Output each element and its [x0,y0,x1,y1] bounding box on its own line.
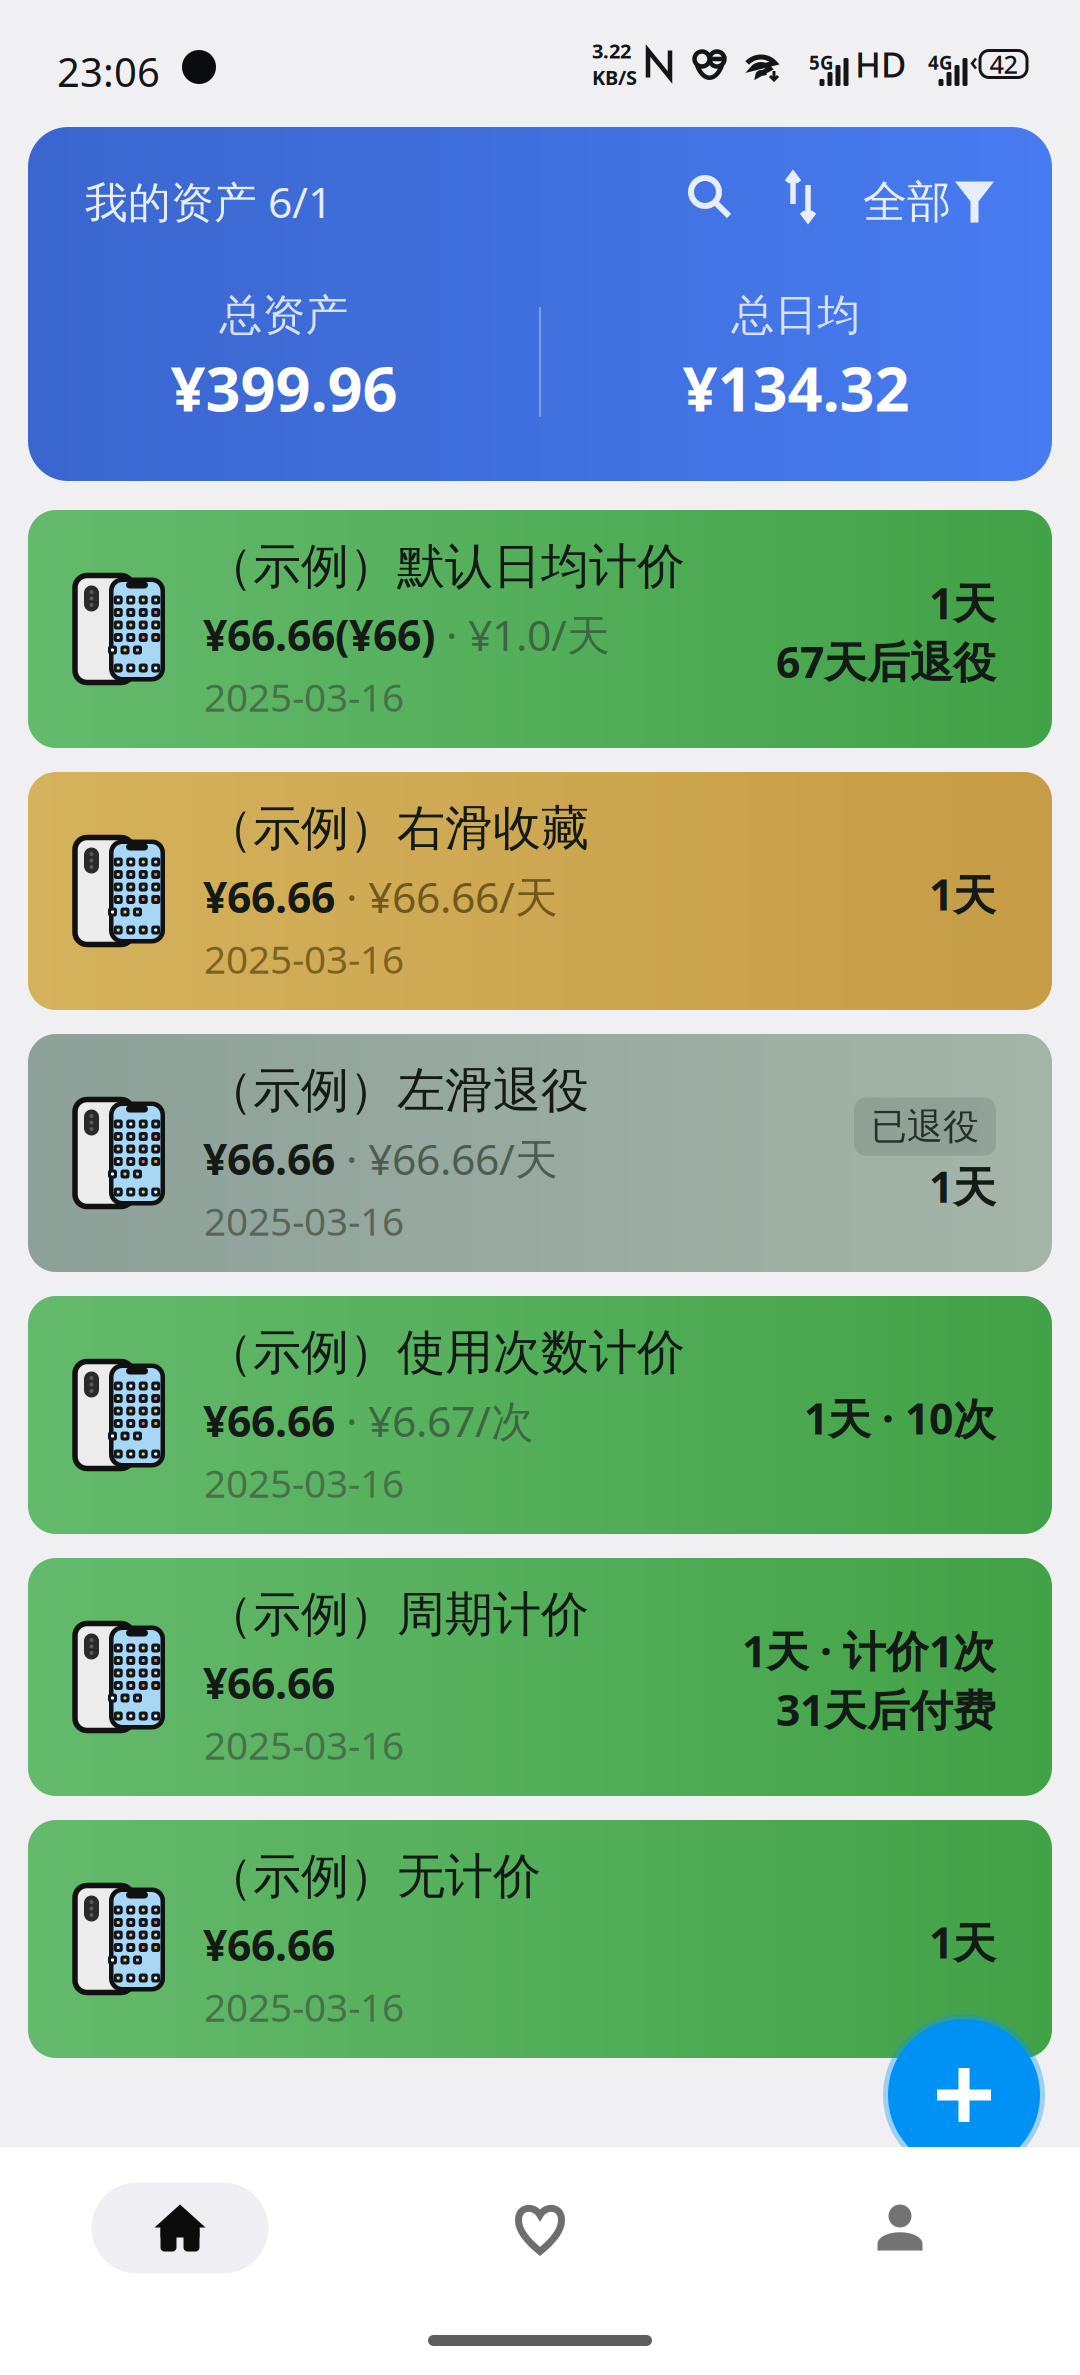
staticText: 1天 [929,1914,996,1970]
staticText: （示例）右滑收藏 [205,799,589,858]
staticText: 2025-03-16 [204,671,404,722]
staticText: 2025-03-16 [204,1719,404,1770]
button[interactable]: （示例）周期计价 [28,1558,1052,1796]
button[interactable]: （示例）使用次数计价 [28,1296,1052,1534]
button[interactable]: Sort [786,172,816,223]
staticText: 2025-03-16 [204,933,404,984]
staticText: ¥399.96 [170,347,397,428]
staticText: 1天 · 计价1次 [742,1622,996,1679]
button[interactable]: Profile [877,2205,922,2251]
staticText: ¥66.66(¥66) [203,606,435,663]
staticText: （示例）使用次数计价 [205,1323,685,1382]
staticText: 2025-03-16 [204,1457,404,1508]
staticText: 1天 · 10次 [804,1390,996,1446]
button[interactable]: Search [688,175,732,219]
staticText: 23:06 [57,45,160,98]
staticText: 31天后付费 [776,1681,996,1738]
button[interactable]: （示例）默认日均计价 [28,510,1052,748]
staticText: 总日均 [731,289,860,341]
staticText: 67天后退役 [776,633,996,690]
staticText: 我的资产 6/1 [85,173,332,230]
staticText: ¥66.66 [203,868,335,925]
staticText: ¥66.66 [203,1916,335,1973]
staticText: ¥134.32 [682,347,909,428]
staticText: 3.22 KB/S [592,37,637,90]
staticText: 1天 [929,574,996,631]
button[interactable]: （示例）无计价 [28,1820,1052,2058]
staticText: 1天 [929,866,996,922]
staticText: 2025-03-16 [204,1195,404,1246]
staticText: · ¥66.66/天 [335,868,558,925]
staticText: （示例）左滑退役 [205,1061,589,1120]
staticText: ¥66.66 [203,1654,335,1711]
staticText: · ¥1.0/天 [435,606,610,663]
button[interactable]: 全部 [863,175,994,229]
staticText: 42 [989,47,1017,81]
button[interactable]: Favorites [515,2204,565,2252]
button[interactable]: Home [91,2182,268,2273]
staticText: （示例）无计价 [205,1847,541,1906]
button[interactable]: （示例）右滑收藏 [28,772,1052,1010]
button[interactable]: （示例）左滑退役 [28,1034,1052,1272]
staticText: 全部 [863,175,951,229]
button[interactable]: Add asset [883,2014,1045,2176]
staticText: （示例）周期计价 [205,1585,589,1644]
staticText: ¥66.66 [203,1130,335,1187]
staticText: · ¥6.67/次 [335,1392,534,1449]
staticText: （示例）默认日均计价 [205,537,685,596]
staticText: 5G [809,50,834,75]
staticText: 总资产 [219,289,348,341]
staticText: 已退役 [871,1105,979,1149]
staticText: 2025-03-16 [204,1981,404,2032]
staticText: HD [855,41,906,87]
staticText: 1天 [929,1158,996,1214]
staticText: ¥66.66 [203,1392,335,1449]
staticText: · ¥66.66/天 [335,1130,558,1187]
staticText: 4G [928,50,953,75]
